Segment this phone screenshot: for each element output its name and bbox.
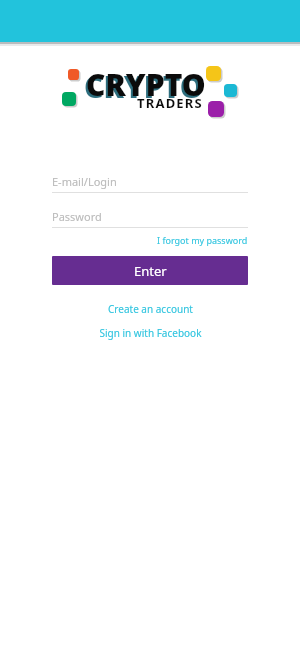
button[interactable]: Sign in with Facebook xyxy=(91,324,210,342)
button[interactable]: Password xyxy=(52,205,248,228)
staticText: TRADERS xyxy=(137,94,203,112)
staticText: Sign in with Facebook xyxy=(99,326,202,340)
staticText: I forgot my password xyxy=(157,234,248,246)
button[interactable]: Create an account xyxy=(100,300,201,318)
button[interactable]: Enter xyxy=(52,256,248,285)
staticText: CRYPTO xyxy=(84,66,204,107)
staticText: CRYPTO xyxy=(86,64,206,105)
button[interactable]: E-mail/Login xyxy=(52,170,248,193)
button[interactable]: I forgot my password xyxy=(157,232,248,248)
staticText: Enter xyxy=(134,262,167,280)
staticText: Create an account xyxy=(108,302,193,316)
staticText: Password xyxy=(52,209,102,224)
staticText: E-mail/Login xyxy=(52,174,117,189)
